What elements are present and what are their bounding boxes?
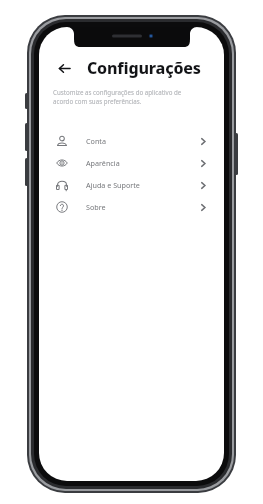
staticText: Configurações [87,57,201,79]
staticText: Conta [86,136,197,146]
staticText: Customize as configurações do aplicativo… [53,88,182,106]
staticText: Sobre [86,202,197,212]
button[interactable]: Voltar [53,57,75,79]
button[interactable]: Conta [53,130,210,152]
button[interactable]: Sobre [53,196,210,218]
button[interactable]: Aparência [53,152,210,174]
staticText: Ajuda e Suporte [86,180,197,190]
staticText: Aparência [86,158,197,168]
button[interactable]: Ajuda e Suporte [53,174,210,196]
